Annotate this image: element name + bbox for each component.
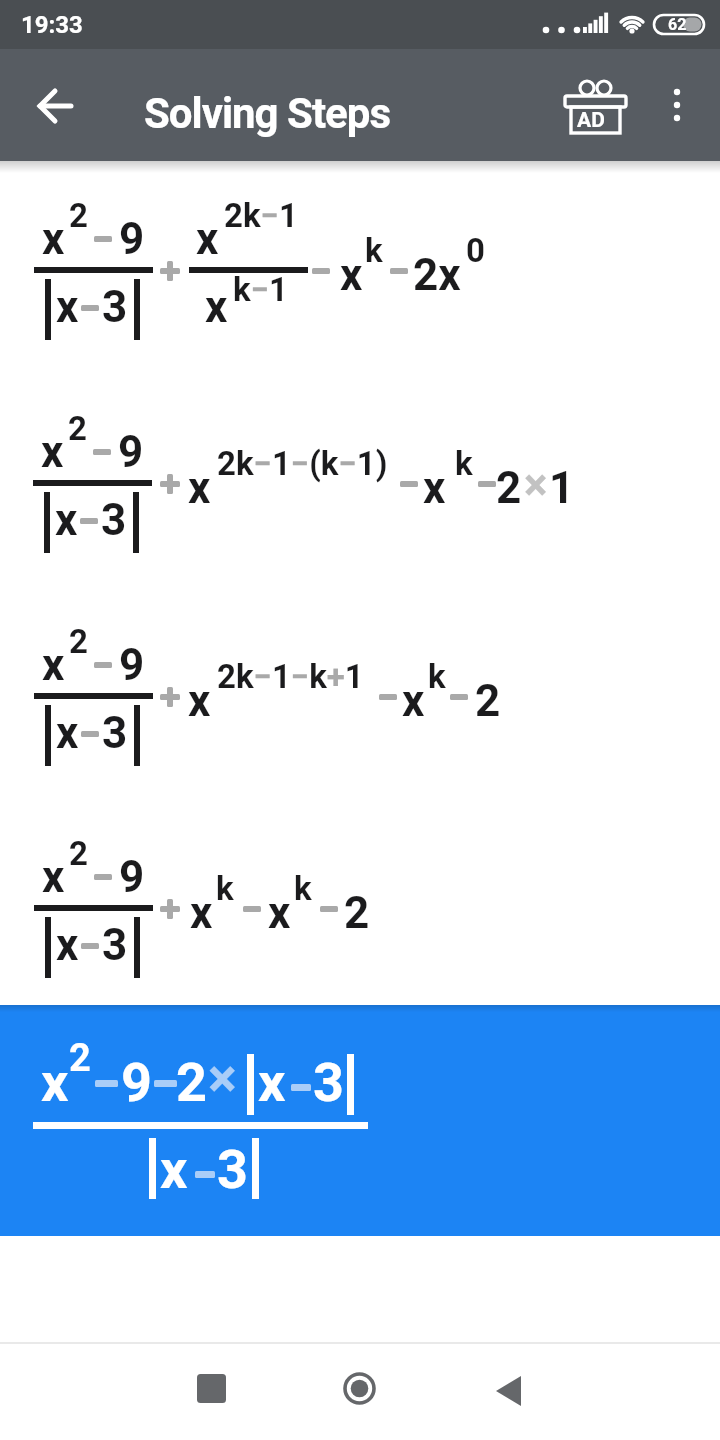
staticText: k bbox=[428, 657, 446, 696]
staticText: x bbox=[188, 675, 211, 727]
button[interactable] bbox=[0, 1005, 720, 1236]
staticText: x bbox=[268, 887, 291, 939]
staticText: 9 bbox=[121, 1051, 152, 1114]
staticText: k bbox=[294, 869, 312, 908]
button[interactable] bbox=[16, 65, 96, 147]
staticText: × bbox=[524, 459, 548, 511]
button[interactable] bbox=[553, 70, 637, 142]
button[interactable] bbox=[0, 180, 720, 392]
staticText: 2 bbox=[68, 409, 87, 448]
staticText: 9 bbox=[119, 639, 145, 691]
staticText: k bbox=[216, 869, 234, 908]
staticText: 2 bbox=[344, 887, 370, 939]
staticText: 2 bbox=[496, 462, 522, 514]
staticText: x bbox=[56, 281, 79, 333]
staticText: 2k−1−(k−1) bbox=[217, 444, 388, 483]
button[interactable] bbox=[0, 604, 720, 816]
staticText: AD bbox=[577, 108, 605, 133]
staticText: 9 bbox=[119, 213, 145, 265]
staticText: x bbox=[205, 281, 228, 333]
staticText: 0 bbox=[466, 231, 485, 270]
staticText: x bbox=[41, 426, 64, 478]
staticText: x bbox=[42, 213, 65, 265]
staticText: x bbox=[56, 919, 79, 971]
staticText: x bbox=[196, 213, 219, 265]
button[interactable] bbox=[290, 1344, 430, 1440]
staticText: x bbox=[42, 851, 65, 903]
staticText: k bbox=[455, 444, 473, 483]
staticText: x bbox=[340, 249, 363, 301]
staticText: 2x bbox=[413, 249, 461, 301]
staticText: x bbox=[190, 887, 213, 939]
button[interactable] bbox=[651, 70, 703, 142]
staticText: Solving Steps bbox=[144, 89, 391, 138]
staticText: 2 bbox=[475, 675, 501, 727]
button[interactable] bbox=[0, 392, 720, 604]
staticText: k−1 bbox=[233, 270, 288, 309]
staticText: 62 bbox=[668, 15, 687, 34]
staticText: 9 bbox=[119, 851, 145, 903]
staticText: 3 bbox=[217, 1138, 248, 1201]
staticText: x bbox=[402, 675, 425, 727]
staticText: 3 bbox=[102, 919, 128, 971]
staticText: 3 bbox=[102, 707, 128, 759]
staticText: 2 bbox=[176, 1051, 207, 1114]
staticText: 3 bbox=[101, 494, 127, 546]
button[interactable] bbox=[0, 816, 720, 1005]
staticText: x bbox=[55, 494, 78, 546]
staticText: x bbox=[56, 707, 79, 759]
staticText: 3 bbox=[313, 1051, 344, 1114]
staticText: x bbox=[42, 639, 65, 691]
button[interactable] bbox=[440, 1344, 600, 1440]
staticText: x bbox=[41, 1051, 69, 1114]
staticText: 19:33 bbox=[21, 11, 83, 39]
staticText: 2 bbox=[69, 1036, 91, 1081]
staticText: x bbox=[160, 1138, 188, 1201]
staticText: 2 bbox=[69, 622, 88, 661]
staticText: 2k−1 bbox=[224, 196, 298, 235]
staticText: 2 bbox=[69, 196, 88, 235]
staticText: 3 bbox=[102, 281, 128, 333]
staticText: x bbox=[258, 1051, 286, 1114]
staticText: × bbox=[208, 1047, 237, 1110]
staticText: 9 bbox=[118, 426, 144, 478]
staticText: 1 bbox=[549, 462, 575, 514]
staticText: x bbox=[188, 462, 211, 514]
staticText: 2k−1−k+1 bbox=[217, 657, 364, 696]
button[interactable] bbox=[120, 1344, 280, 1440]
staticText: 2 bbox=[69, 834, 88, 873]
staticText: k bbox=[365, 231, 383, 270]
staticText: x bbox=[423, 462, 446, 514]
